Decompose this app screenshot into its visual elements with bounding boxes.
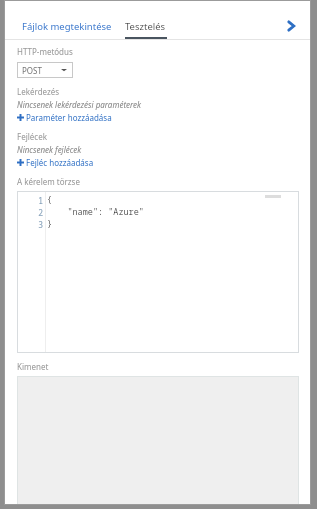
staticText: A kérelem törzse <box>17 176 80 187</box>
staticText: Fejlécek <box>17 131 47 142</box>
staticText: } <box>47 218 53 230</box>
staticText: 1 <box>38 195 43 206</box>
staticText: Tesztelés <box>125 20 166 33</box>
button[interactable]: 1 <box>17 191 299 353</box>
staticText: Nincsenek lekérdezési paraméterek <box>17 99 142 110</box>
button[interactable]: Fejléc hozzáadása <box>17 157 94 168</box>
staticText: Nincsenek fejlécek <box>17 144 82 155</box>
button[interactable]: Paraméter hozzáadása <box>17 112 112 123</box>
staticText: Lekérdezés <box>17 86 60 97</box>
staticText: 2 <box>38 207 43 218</box>
button[interactable]: Fájlok megtekintése <box>18 0 118 39</box>
staticText: HTTP-metódus <box>17 46 73 57</box>
staticText: "name": "Azure" <box>47 206 144 218</box>
staticText: Paraméter hozzáadása <box>26 112 112 123</box>
staticText: Fájlok megtekintése <box>22 20 112 33</box>
button[interactable]: Tesztelés <box>121 0 170 39</box>
button[interactable]: Következő <box>281 16 301 36</box>
staticText: { <box>47 194 53 206</box>
button[interactable]: POST <box>17 62 73 78</box>
staticText: POST <box>22 65 42 76</box>
staticText: Kimenet <box>17 361 49 372</box>
staticText: Fejléc hozzáadása <box>26 157 94 168</box>
staticText: 3 <box>38 219 43 230</box>
